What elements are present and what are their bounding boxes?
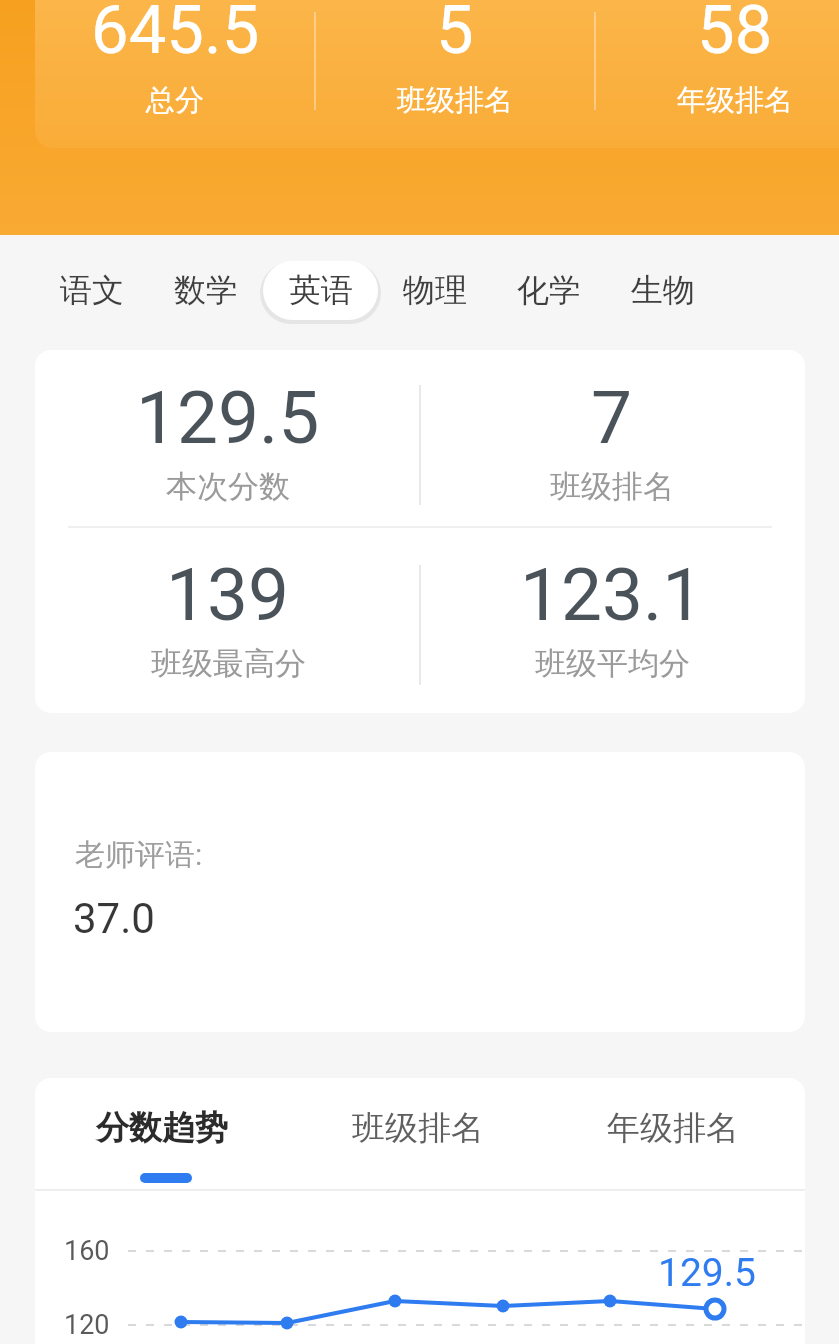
staticText: 129.5 <box>658 1250 756 1296</box>
staticText: 总分 <box>146 82 204 119</box>
staticText: 老师评语: <box>75 836 203 874</box>
staticText: 5 <box>436 0 474 70</box>
staticText: 生物 <box>631 270 695 310</box>
staticText: 129.5 <box>136 375 320 461</box>
staticText: 班级排名 <box>550 467 674 506</box>
staticText: 物理 <box>403 270 467 310</box>
button[interactable]: 生物 <box>608 260 718 320</box>
staticText: 年级排名 <box>677 82 793 119</box>
button[interactable]: 化学 <box>494 260 604 320</box>
button[interactable] <box>263 261 378 320</box>
staticText: 分数趋势 <box>96 1107 228 1149</box>
staticText: 645.5 <box>91 0 260 70</box>
button[interactable]: 分数趋势 <box>72 1096 252 1160</box>
staticText: 58 <box>697 0 773 70</box>
staticText: 120 <box>64 1309 110 1341</box>
staticText: 本次分数 <box>166 467 290 506</box>
button[interactable]: 语文 <box>37 260 147 320</box>
staticText: 班级排名 <box>397 82 513 119</box>
button[interactable]: 英语 <box>266 260 376 320</box>
staticText: 班级平均分 <box>535 644 690 683</box>
staticText: 123.1 <box>520 552 704 638</box>
button[interactable]: 班级排名 <box>328 1096 508 1160</box>
button[interactable]: 年级排名 <box>583 1096 763 1160</box>
staticText: 班级最高分 <box>151 644 306 683</box>
button[interactable]: 物理 <box>380 260 490 320</box>
staticText: 英语 <box>289 270 353 310</box>
staticText: 数学 <box>174 270 238 310</box>
staticText: 语文 <box>60 270 124 310</box>
staticText: 班级排名 <box>352 1107 484 1149</box>
staticText: 7 <box>591 375 633 461</box>
staticText: 139 <box>166 552 290 638</box>
staticText: 年级排名 <box>607 1107 739 1149</box>
staticText: 化学 <box>517 270 581 310</box>
staticText: 37.0 <box>73 894 155 943</box>
staticText: 160 <box>64 1235 110 1267</box>
button[interactable]: 数学 <box>151 260 261 320</box>
